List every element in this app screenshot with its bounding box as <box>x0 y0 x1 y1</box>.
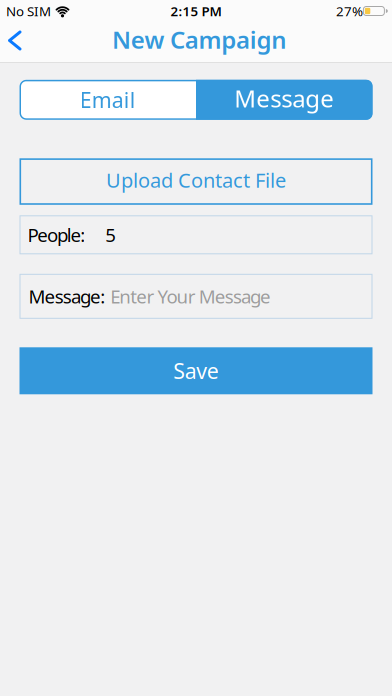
staticText: No SIM <box>6 2 51 20</box>
staticText: People: <box>27 222 85 247</box>
staticText: Email <box>80 86 136 114</box>
staticText: 5 <box>105 222 116 247</box>
staticText: Message: <box>28 284 105 309</box>
staticText: 2:15 PM <box>170 2 221 20</box>
button[interactable]: People: <box>19 215 372 254</box>
button[interactable]: Upload Contact File <box>19 158 372 205</box>
staticText: Upload Contact File <box>106 167 286 193</box>
button[interactable]: Email <box>19 80 196 120</box>
staticText: Save <box>173 357 219 385</box>
button[interactable]: Back <box>0 24 32 57</box>
button[interactable]: Save <box>19 347 372 394</box>
button[interactable]: Message <box>196 80 372 120</box>
staticText: New Campaign <box>112 24 286 55</box>
staticText: Message <box>234 82 334 114</box>
staticText: 27% <box>336 2 363 20</box>
staticText: Enter Your Message <box>110 284 271 309</box>
button[interactable]: Message: <box>19 274 372 319</box>
